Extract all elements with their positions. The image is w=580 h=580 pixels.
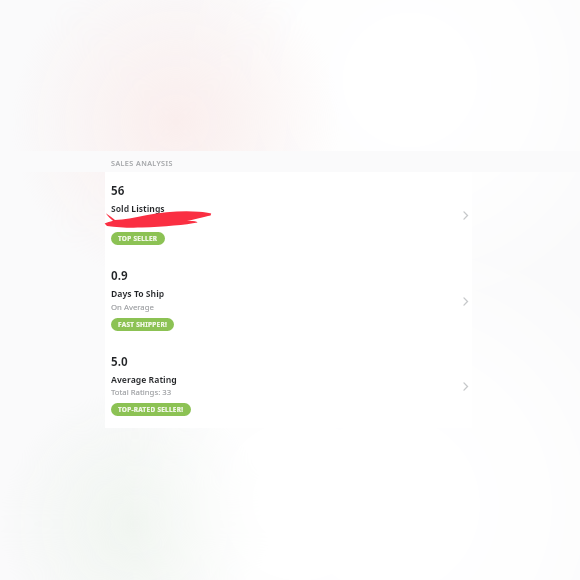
staticText: TOP-RATED SELLER!	[118, 405, 184, 414]
button[interactable]: TOP SELLER	[111, 232, 165, 245]
button[interactable]: Open Average Rating	[455, 376, 475, 396]
staticText: 56	[111, 183, 125, 199]
button[interactable]	[105, 172, 472, 258]
button[interactable]: FAST SHIPPER!	[111, 318, 174, 331]
staticText: Sold Listings	[111, 203, 165, 215]
staticText: 5.0	[111, 354, 128, 370]
staticText: TOP SELLER	[118, 234, 158, 243]
staticText: FAST SHIPPER!	[118, 320, 167, 329]
staticText: Total Ratings: 33	[111, 387, 172, 398]
staticText: 0.9	[111, 268, 128, 284]
button[interactable]	[105, 258, 472, 344]
button[interactable]	[105, 343, 472, 429]
staticText: On Average	[111, 302, 154, 313]
staticText: Average Rating	[111, 374, 177, 386]
button[interactable]: Open Days To Ship	[455, 291, 475, 311]
staticText: SALES ANALYSIS	[111, 158, 173, 168]
staticText: Days To Ship	[111, 288, 165, 300]
button[interactable]: Open Sold Listings	[455, 205, 475, 225]
button[interactable]: TOP-RATED SELLER!	[111, 403, 191, 416]
